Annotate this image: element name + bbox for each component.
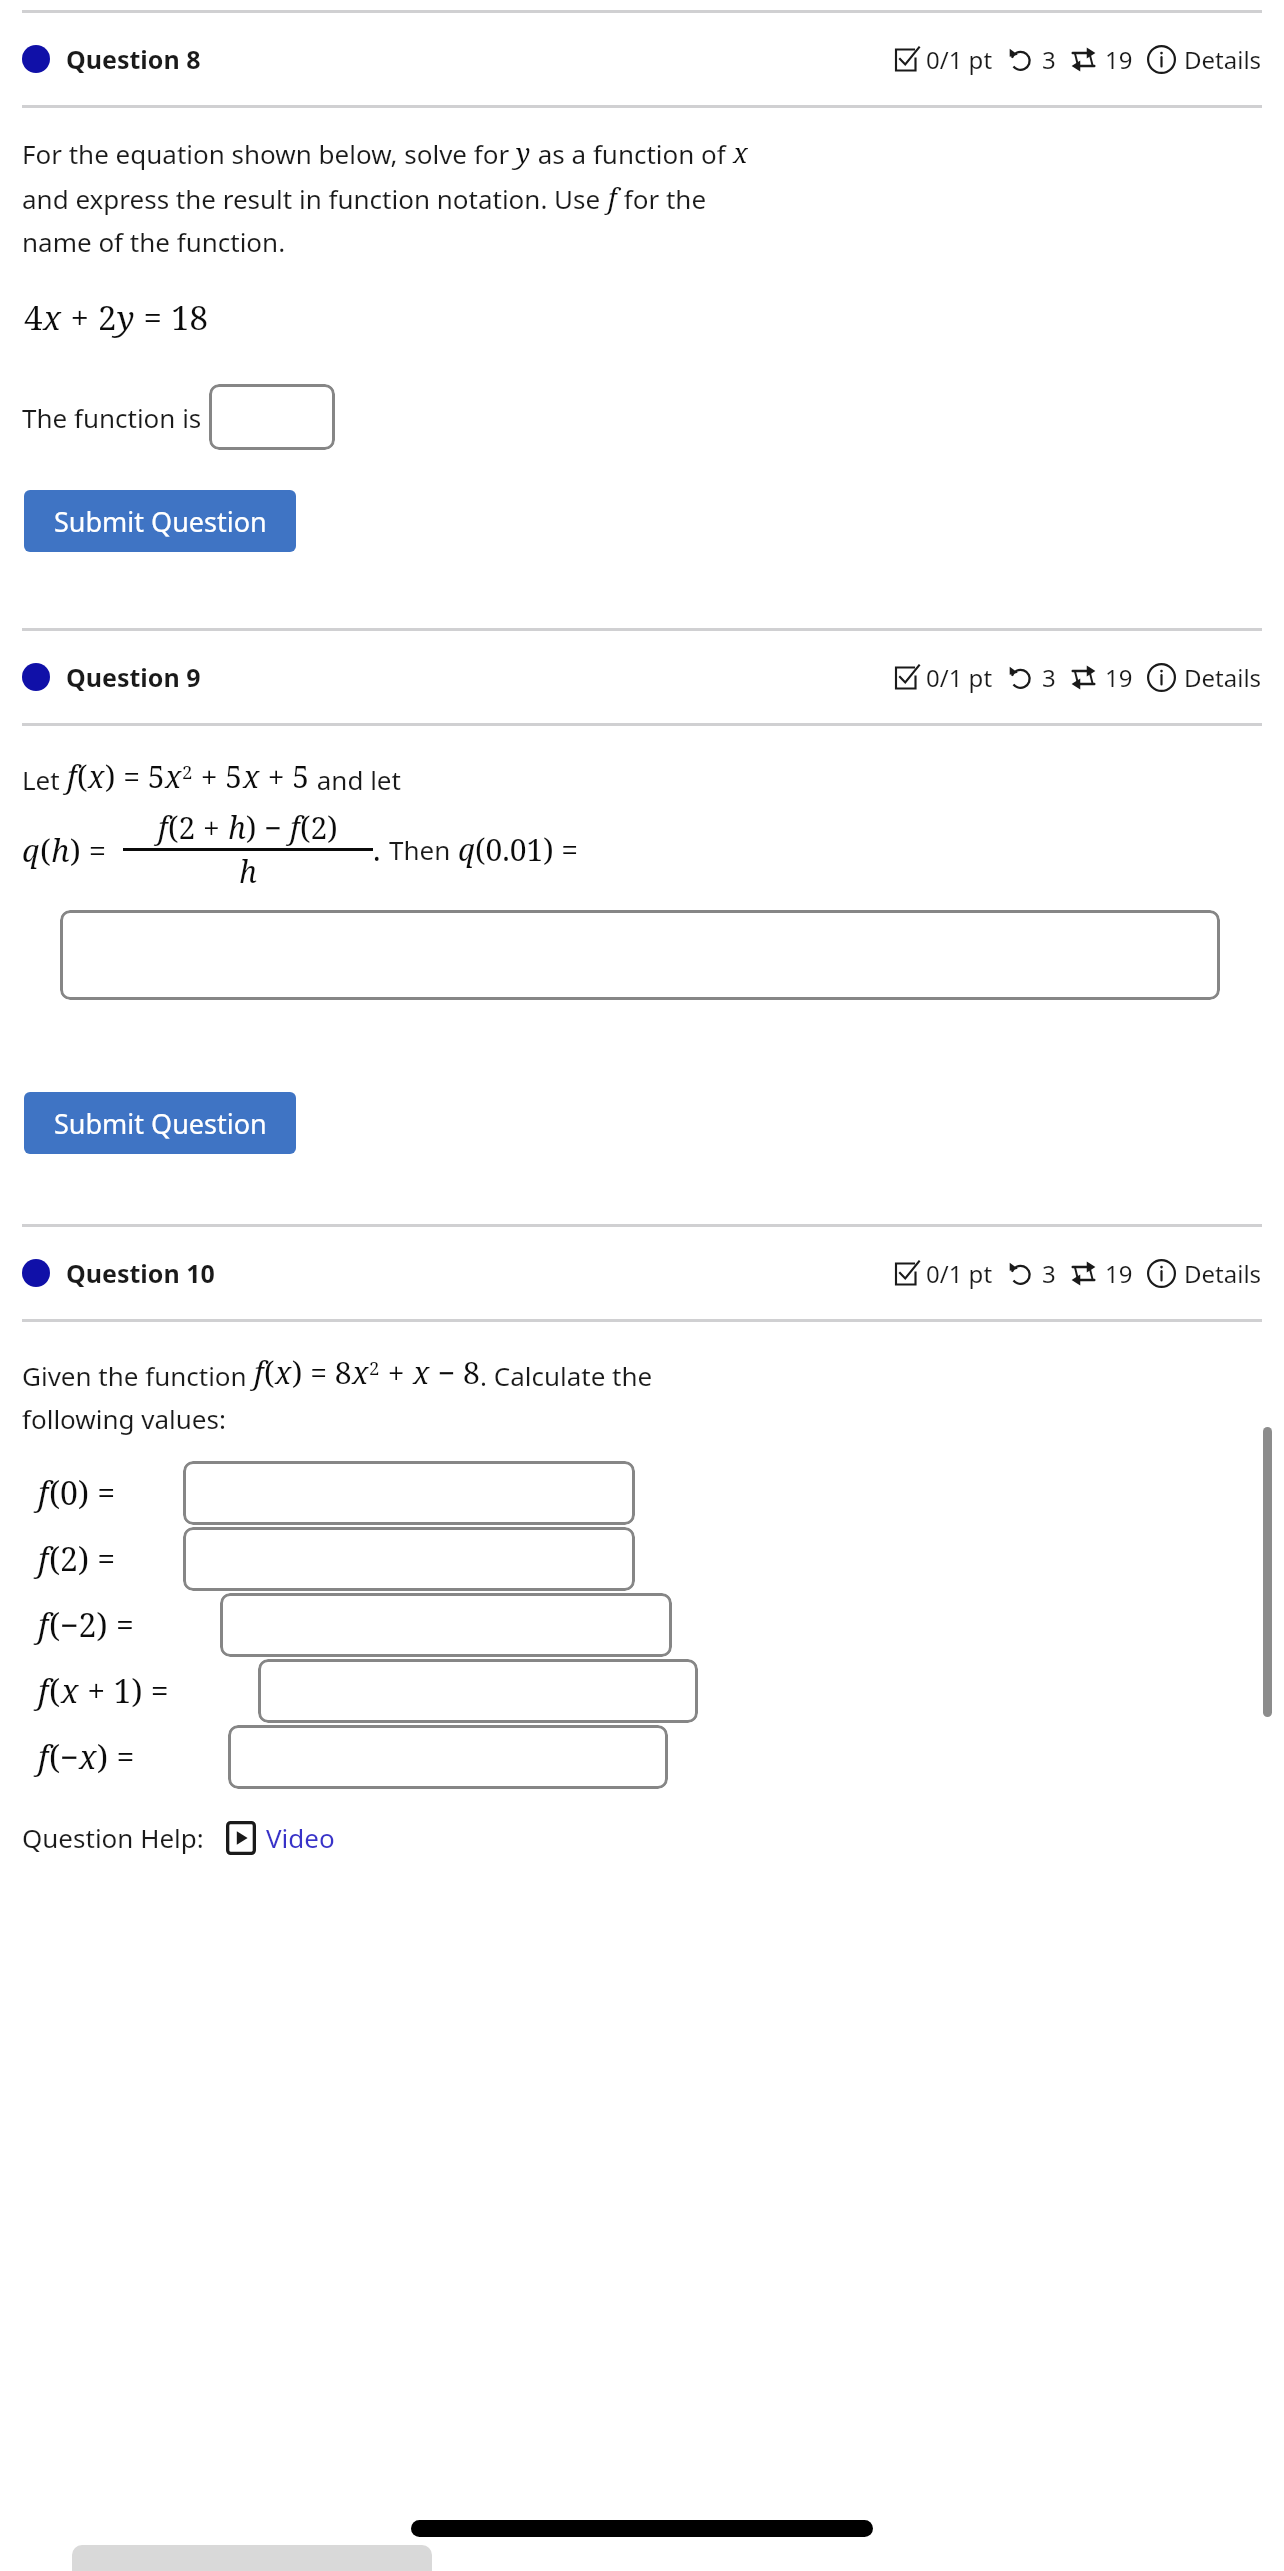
staticText: x [43,295,62,340]
staticText: name of the function. [22,224,286,259]
staticText: + 5 [193,756,243,797]
staticText: ( [77,756,88,797]
staticText: ) = 8 [292,1352,352,1393]
staticText: − 8 [430,1352,480,1393]
button[interactable]: Answer field [183,1461,635,1525]
button[interactable]: Details [1147,661,1262,694]
staticText: (2) [300,807,338,848]
staticText: 0/1 pt [926,661,993,694]
staticText: (0) = [49,1471,124,1515]
staticText: (2) = [49,1537,124,1581]
button[interactable]: Submit Question [24,1092,296,1154]
button[interactable]: Answer field [258,1659,698,1723]
staticText: y [516,134,531,171]
staticText: f [38,1537,49,1581]
staticText: and express the result in function notat… [22,181,608,216]
staticText: Question 10 [66,1256,215,1290]
staticText: The function is [22,400,209,435]
staticText: . Calculate the [480,1358,653,1393]
staticText: 2 [369,1355,380,1380]
staticText: h [51,829,70,871]
staticText: Question Help: [22,1820,204,1855]
staticText: x [88,756,105,797]
staticText: following values: [22,1401,226,1436]
staticText: f [38,1735,49,1779]
staticText: q [22,829,40,871]
staticText: ( [264,1352,275,1393]
staticText: Submit Question [54,503,267,540]
staticText: 19 [1105,1257,1133,1290]
staticText: + [62,295,98,340]
staticText: for the [617,181,707,216]
staticText: 2 [98,295,117,340]
staticText: f [38,1471,49,1515]
staticText: as a function of [531,136,733,171]
staticText: ) = [70,829,115,871]
staticText: Submit Question [54,1105,267,1142]
staticText: Given the function [22,1358,254,1393]
button[interactable]: Answer field [209,384,335,450]
staticText: Details [1184,661,1262,694]
staticText: x [275,1352,292,1393]
staticText: Question 8 [66,42,201,76]
staticText: ) = 5 [105,756,165,797]
staticText: 19 [1105,661,1133,694]
staticText: 3 [1042,43,1056,76]
staticText: 2 [182,759,193,784]
button[interactable]: Video [226,1820,335,1855]
staticText: ) = [97,1735,143,1779]
staticText: ( [40,829,51,871]
staticText: x [352,1352,369,1393]
staticText: Question 9 [66,660,201,694]
staticText: (− [49,1735,79,1779]
staticText: y [117,295,135,340]
staticText: x [243,756,260,797]
staticText: h [239,851,257,892]
staticText: (2 + [168,807,228,848]
staticText: 19 [1105,43,1133,76]
staticText: ) − [246,807,290,848]
staticText: f [254,1352,264,1393]
staticText: f [158,807,168,848]
staticText: 0/1 pt [926,1257,993,1290]
staticText: 3 [1042,1257,1056,1290]
staticText: 4 [24,295,43,340]
staticText: (−2) = [49,1603,143,1647]
staticText: f [290,807,300,848]
button[interactable]: Answer field [220,1593,672,1657]
staticText: Details [1184,43,1262,76]
staticText: f [38,1669,49,1713]
staticText: 18 [171,295,208,340]
button[interactable]: Answer field [228,1725,668,1789]
staticText: f [608,179,617,216]
staticText: + 1) = [79,1669,178,1713]
staticText: f [38,1603,49,1647]
button[interactable]: Submit Question [24,490,296,552]
staticText: . [373,829,389,870]
button[interactable]: Answer field [183,1527,635,1591]
staticText: Let [22,762,67,797]
staticText: = [135,295,171,340]
staticText: x [61,1669,79,1713]
staticText: x [733,134,748,171]
staticText: h [228,807,246,848]
staticText: For the equation shown below, solve for [22,136,516,171]
button[interactable]: Details [1147,1257,1262,1290]
staticText: 3 [1042,661,1056,694]
staticText: (0.01) = [475,829,586,870]
staticText: + [380,1352,413,1393]
staticText: Then [389,832,458,867]
staticText: x [413,1352,430,1393]
button[interactable]: Answer field [60,910,1220,1000]
staticText: 0/1 pt [926,43,993,76]
staticText: f [67,756,77,797]
staticText: Video [266,1820,335,1855]
staticText: x [165,756,182,797]
staticText: x [79,1735,97,1779]
staticText: ( [49,1669,61,1713]
button[interactable]: Details [1147,43,1262,76]
staticText: + 5 [260,756,310,797]
staticText: q [458,829,475,870]
staticText: Details [1184,1257,1262,1290]
